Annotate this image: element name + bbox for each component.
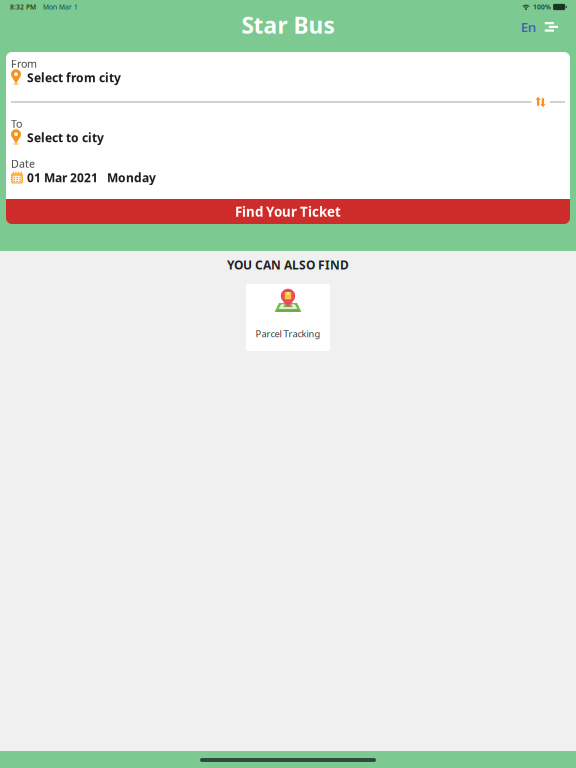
button[interactable]: From (6, 52, 570, 93)
button[interactable]: En (515, 13, 537, 41)
staticText: 01 Mar 2021 (27, 169, 98, 185)
button[interactable]: Date (6, 150, 570, 199)
staticText: YOU CAN ALSO FIND (227, 257, 349, 273)
staticText: Find Your Ticket (235, 203, 341, 220)
button[interactable]: Menu (537, 16, 576, 38)
staticText: From (11, 56, 37, 71)
staticText: 100% (533, 3, 551, 11)
button[interactable]: Find Your Ticket (6, 199, 570, 224)
staticText: Select to city (27, 129, 104, 145)
staticText: Star Bus (241, 10, 334, 40)
staticText: To (11, 116, 22, 131)
staticText: Parcel Tracking (255, 327, 320, 340)
staticText: Monday (107, 169, 156, 185)
staticText: Date (11, 156, 35, 171)
button[interactable]: To (6, 109, 570, 150)
staticText: Select from city (27, 69, 121, 85)
staticText: Mon Mar 1 (43, 3, 78, 11)
button[interactable]: Parcel Tracking (246, 284, 330, 351)
staticText: En (521, 18, 537, 36)
staticText: 8:32 PM (10, 3, 36, 11)
